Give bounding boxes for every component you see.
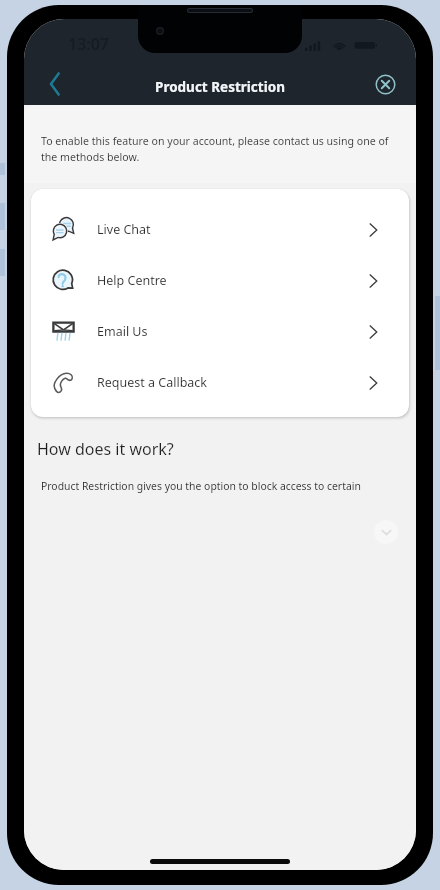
staticText: Live Chat	[97, 221, 151, 238]
button[interactable]: Back	[32, 62, 76, 106]
staticText: Help Centre	[97, 272, 167, 289]
button[interactable]: Expand	[374, 520, 398, 544]
button[interactable]: Close	[363, 62, 407, 106]
staticText: How does it work?	[37, 438, 174, 460]
staticText: Product Restriction	[155, 78, 285, 96]
staticText: To enable this feature on your account, …	[41, 134, 389, 164]
button[interactable]: Email Us	[31, 306, 409, 357]
button[interactable]: Request a Callback	[31, 357, 409, 408]
staticText: Product Restriction gives you the option…	[41, 479, 361, 493]
staticText: Email Us	[97, 323, 148, 340]
button[interactable]: Live Chat	[31, 204, 409, 255]
button[interactable]: Help Centre	[31, 255, 409, 306]
staticText: Request a Callback	[97, 374, 208, 391]
